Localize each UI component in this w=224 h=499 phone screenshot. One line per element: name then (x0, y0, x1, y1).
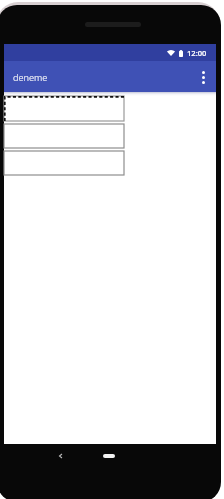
button[interactable] (4, 124, 124, 148)
button[interactable]: Back (52, 448, 68, 464)
staticText: deneme (13, 71, 48, 84)
button[interactable]: More options (190, 64, 216, 90)
staticText: 12:00 (187, 48, 207, 58)
button[interactable] (4, 151, 124, 175)
button[interactable]: Home (103, 454, 115, 458)
button[interactable] (4, 96, 124, 121)
